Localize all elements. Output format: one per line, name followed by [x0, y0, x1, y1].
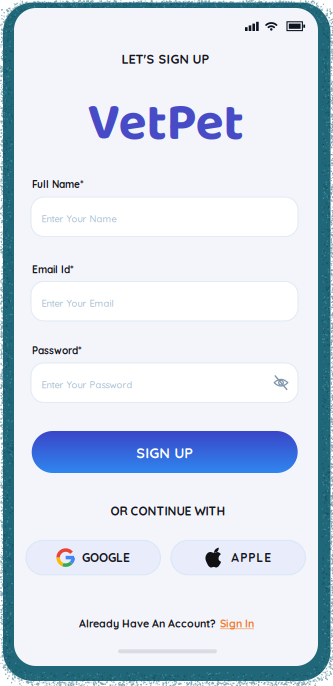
- button[interactable]: Enter Your Name: [31, 197, 298, 237]
- button[interactable]: Enter Your Password: [31, 363, 298, 402]
- staticText: Email Id*: [32, 263, 74, 276]
- staticText: Already Have An Account?: [79, 617, 216, 630]
- staticText: A P P L E: [231, 550, 271, 565]
- button[interactable]: Enter Your Email: [31, 281, 298, 321]
- staticText: Sign In: [220, 617, 254, 630]
- button[interactable]: A P P L E: [171, 540, 305, 575]
- staticText: OR CONTINUE WITH: [110, 503, 225, 518]
- staticText: GOOGLE: [82, 550, 130, 565]
- staticText: Enter Your Name: [41, 213, 116, 225]
- button[interactable]: SIGN UP: [32, 431, 298, 473]
- staticText: Enter Your Email: [41, 297, 113, 309]
- staticText: SIGN UP: [136, 444, 193, 462]
- button[interactable]: GOOGLE: [26, 540, 160, 575]
- button[interactable]: Sign In: [220, 617, 254, 630]
- staticText: Password*: [32, 344, 82, 357]
- staticText: VetPet: [87, 82, 243, 166]
- button[interactable]: [271, 375, 291, 391]
- staticText: LET'S SIGN UP: [121, 51, 209, 67]
- staticText: Full Name*: [32, 178, 84, 190]
- staticText: Enter Your Password: [41, 379, 132, 391]
